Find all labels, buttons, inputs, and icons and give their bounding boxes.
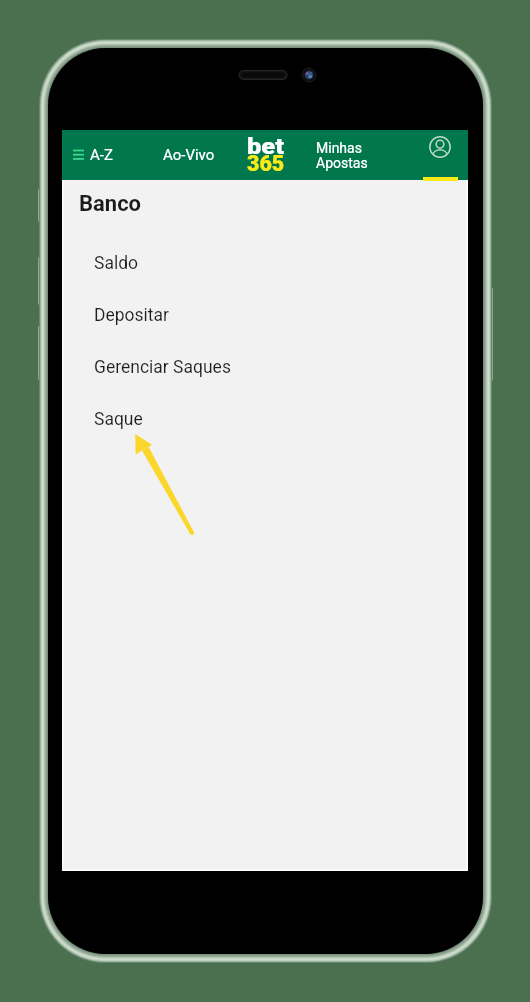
button[interactable]: Saque — [62, 393, 468, 445]
staticText: Banco — [79, 191, 142, 217]
button[interactable]: Saldo — [62, 237, 468, 289]
button[interactable]: A-Z — [62, 146, 121, 164]
button[interactable]: Minhas Apostas — [316, 140, 368, 171]
button[interactable]: Gerenciar Saques — [62, 341, 468, 393]
staticText: Saldo — [94, 253, 139, 274]
staticText: Depositar — [94, 305, 170, 326]
button[interactable]: Depositar — [62, 289, 468, 341]
button[interactable]: bet365 — [247, 130, 285, 180]
staticText: A-Z — [90, 146, 113, 164]
staticText: Saque — [94, 409, 143, 430]
staticText: bet — [247, 134, 284, 160]
button[interactable]: Ao-Vivo — [163, 146, 215, 164]
button[interactable]: Account — [412, 130, 468, 180]
staticText: 365 — [247, 151, 285, 177]
staticText: Gerenciar Saques — [94, 357, 231, 378]
